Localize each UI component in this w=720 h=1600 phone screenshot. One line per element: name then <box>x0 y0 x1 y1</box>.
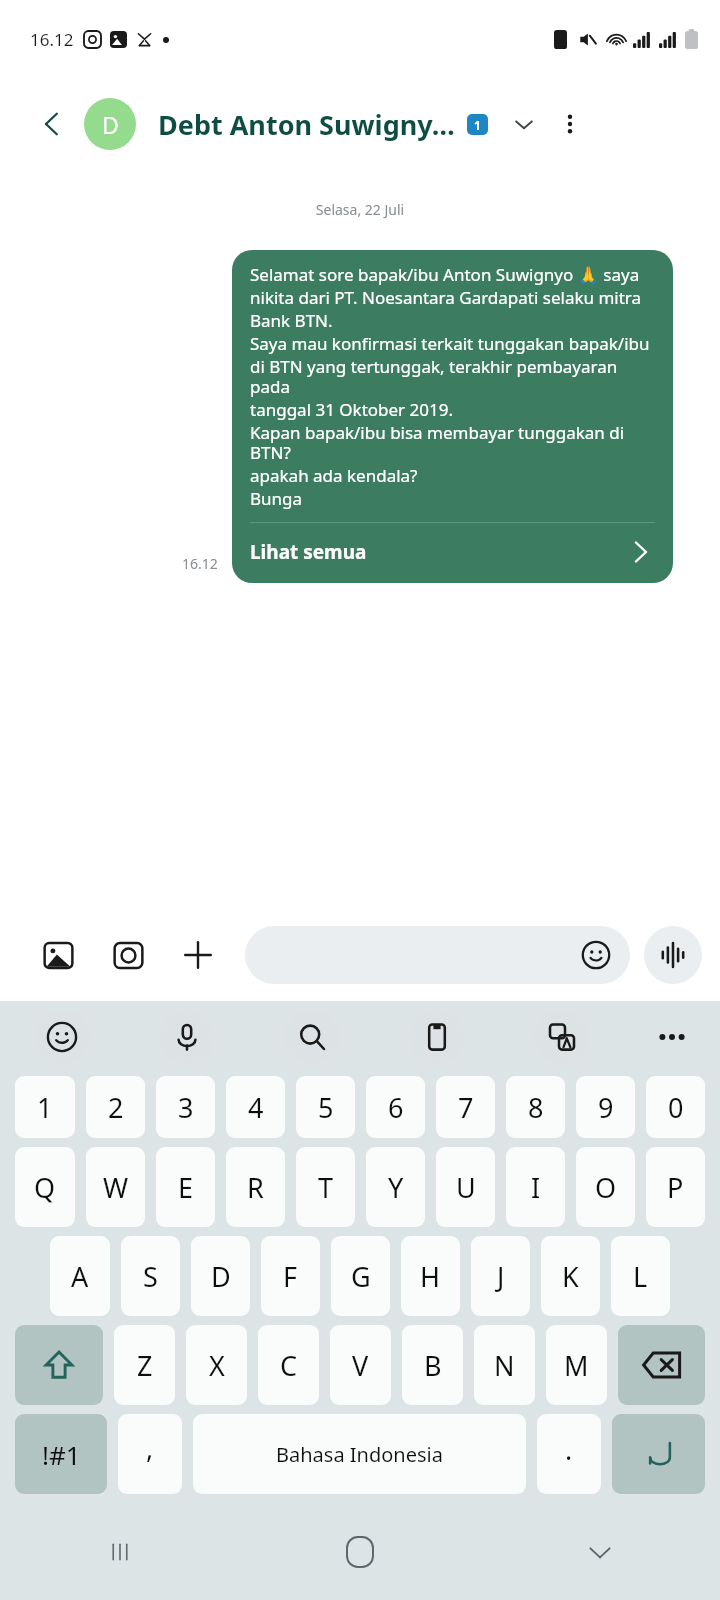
staticText: B <box>424 1347 442 1384</box>
button[interactable]: Emoji <box>245 926 630 984</box>
staticText: T <box>318 1169 334 1206</box>
button[interactable]: X <box>186 1325 247 1405</box>
button[interactable]: Selamat sore bapak/ibu Anton Suwignyo 🙏 … <box>232 250 673 583</box>
staticText: 0 <box>668 1089 684 1126</box>
button[interactable]: Translate <box>534 1010 590 1064</box>
staticText: Q <box>34 1169 56 1206</box>
button[interactable]: P <box>646 1147 705 1227</box>
staticText: 8 <box>528 1089 544 1126</box>
button[interactable]: Debt Anton Suwigny… <box>158 106 488 143</box>
button[interactable]: Emoji <box>34 1010 90 1064</box>
button[interactable]: Search <box>284 1010 340 1064</box>
staticText: F <box>283 1258 298 1295</box>
button[interactable]: , <box>118 1414 182 1494</box>
button[interactable]: Back <box>28 100 76 148</box>
button[interactable]: E <box>156 1147 215 1227</box>
button[interactable]: 3 <box>156 1076 215 1138</box>
staticText: J <box>497 1258 505 1295</box>
staticText: Saya mau konfirmasi terkait tunggakan ba… <box>250 332 650 355</box>
button[interactable]: 5 <box>296 1076 355 1138</box>
staticText: Z <box>137 1347 153 1384</box>
staticText: 1 <box>474 117 481 133</box>
staticText: Kapan bapak/ibu bisa membayar tunggakan … <box>250 421 655 464</box>
button[interactable]: Recent apps <box>0 1504 240 1600</box>
button[interactable]: C <box>258 1325 319 1405</box>
staticText: I <box>531 1169 541 1206</box>
button[interactable]: Home <box>240 1504 480 1600</box>
button[interactable]: D <box>191 1236 250 1316</box>
staticText: 5 <box>318 1089 334 1126</box>
button[interactable]: B <box>402 1325 463 1405</box>
button[interactable]: Clipboard <box>409 1010 465 1064</box>
button[interactable]: Camera <box>106 933 150 977</box>
button[interactable]: W <box>86 1147 145 1227</box>
button[interactable]: Emoji <box>577 936 615 974</box>
button[interactable]: . <box>537 1414 601 1494</box>
button[interactable]: 1 <box>15 1076 75 1138</box>
button[interactable]: 6 <box>366 1076 425 1138</box>
button[interactable]: L <box>611 1236 670 1316</box>
staticText: U <box>456 1169 476 1206</box>
button[interactable]: I <box>506 1147 565 1227</box>
button[interactable]: Q <box>15 1147 75 1227</box>
button[interactable]: 7 <box>436 1076 495 1138</box>
button[interactable]: 2 <box>86 1076 145 1138</box>
button[interactable]: R <box>226 1147 285 1227</box>
staticText: H <box>420 1258 441 1295</box>
button[interactable]: K <box>541 1236 600 1316</box>
button[interactable]: F <box>261 1236 320 1316</box>
button[interactable]: H <box>401 1236 460 1316</box>
button[interactable]: More <box>176 933 220 977</box>
button[interactable]: O <box>576 1147 635 1227</box>
button[interactable]: More options <box>546 100 594 148</box>
button[interactable]: J <box>471 1236 530 1316</box>
staticText: M <box>564 1347 589 1384</box>
staticText: W <box>103 1169 129 1206</box>
button[interactable]: V <box>330 1325 391 1405</box>
staticText: C <box>280 1347 298 1384</box>
button[interactable]: !#1 <box>15 1414 107 1494</box>
button[interactable]: 8 <box>506 1076 565 1138</box>
button[interactable]: Contact avatar <box>84 98 136 150</box>
staticText: 2 <box>108 1089 124 1126</box>
staticText: Bank BTN. <box>250 309 333 332</box>
staticText: Bahasa Indonesia <box>276 1441 443 1468</box>
staticText: apakah ada kendala? <box>250 464 418 487</box>
button[interactable]: 9 <box>576 1076 635 1138</box>
button[interactable]: M <box>546 1325 607 1405</box>
button[interactable]: 0 <box>646 1076 705 1138</box>
button[interactable]: Hide keyboard <box>480 1504 720 1600</box>
button[interactable]: Bahasa Indonesia <box>193 1414 526 1494</box>
staticText: K <box>562 1258 579 1295</box>
button[interactable]: Backspace <box>618 1325 705 1405</box>
staticText: di BTN yang tertunggak, terakhir pembaya… <box>250 355 655 398</box>
button[interactable]: Voice typing <box>159 1010 215 1064</box>
button[interactable]: G <box>331 1236 390 1316</box>
button[interactable]: T <box>296 1147 355 1227</box>
button[interactable]: Z <box>114 1325 175 1405</box>
button[interactable]: Voice input <box>644 926 702 984</box>
staticText: nikita dari PT. Noesantara Gardapati sel… <box>250 286 642 309</box>
staticText: 7 <box>458 1089 474 1126</box>
button[interactable]: S <box>121 1236 180 1316</box>
button[interactable]: Y <box>366 1147 425 1227</box>
staticText: 16.12 <box>182 554 218 573</box>
staticText: N <box>494 1347 515 1384</box>
button[interactable]: 4 <box>226 1076 285 1138</box>
button[interactable]: Shift <box>15 1325 103 1405</box>
staticText: 1 <box>37 1089 53 1126</box>
button[interactable]: U <box>436 1147 495 1227</box>
button[interactable]: N <box>474 1325 535 1405</box>
button[interactable]: Enter <box>612 1414 705 1494</box>
staticText: 9 <box>598 1089 614 1126</box>
button[interactable]: Expand <box>502 102 546 146</box>
staticText: A <box>71 1258 89 1295</box>
button[interactable]: Gallery <box>36 933 80 977</box>
staticText: E <box>178 1169 194 1206</box>
button[interactable]: A <box>50 1236 110 1316</box>
button[interactable]: More keyboard options <box>624 1001 720 1073</box>
staticText: Lihat semua <box>250 539 625 565</box>
staticText: 6 <box>388 1089 404 1126</box>
staticText: D <box>211 1258 231 1295</box>
staticText: tanggal 31 Oktober 2019. <box>250 398 454 421</box>
